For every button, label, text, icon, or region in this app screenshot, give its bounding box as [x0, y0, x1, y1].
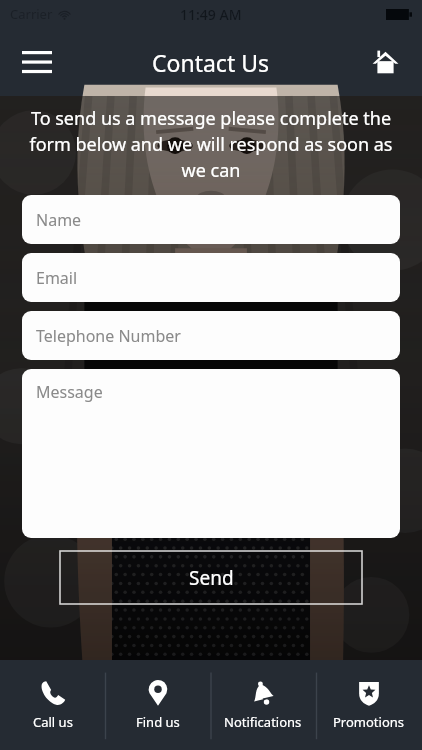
- staticText: 11:49 AM: [180, 5, 242, 24]
- button[interactable]: Send: [60, 551, 362, 604]
- staticText: Message: [36, 381, 103, 403]
- button[interactable]: Find us: [105, 660, 210, 750]
- staticText: Email: [36, 267, 78, 289]
- button[interactable]: Call us: [0, 660, 105, 750]
- button[interactable]: Menu: [14, 39, 60, 85]
- button[interactable]: Name: [22, 195, 400, 244]
- staticText: Carrier: [10, 5, 53, 23]
- staticText: Name: [36, 209, 82, 231]
- staticText: Call us: [33, 713, 73, 731]
- button[interactable]: Telephone Number: [22, 311, 400, 360]
- button[interactable]: Home: [362, 39, 408, 85]
- button[interactable]: Promotions: [316, 660, 422, 750]
- staticText: Find us: [136, 713, 180, 731]
- staticText: Promotions: [333, 713, 405, 731]
- button[interactable]: Notifications: [210, 660, 316, 750]
- staticText: Contact Us: [152, 47, 270, 78]
- staticText: To send us a message please complete the…: [22, 106, 400, 183]
- staticText: Telephone Number: [36, 325, 181, 347]
- staticText: Notifications: [224, 713, 302, 731]
- button[interactable]: Message: [22, 369, 400, 538]
- staticText: Send: [189, 565, 234, 591]
- button[interactable]: Email: [22, 253, 400, 302]
